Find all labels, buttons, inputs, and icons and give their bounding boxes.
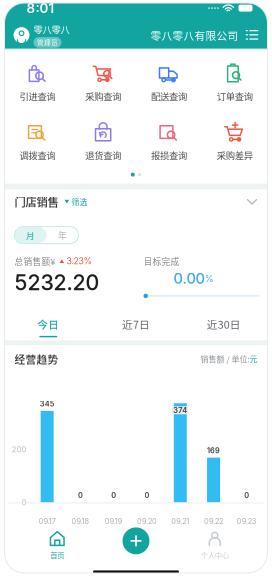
staticText: 目标完成 bbox=[143, 255, 179, 267]
button[interactable]: 配送查询 bbox=[136, 60, 202, 106]
staticText: 0 bbox=[111, 491, 116, 500]
staticText: 374 bbox=[173, 406, 187, 415]
button[interactable]: 个人中心 bbox=[162, 527, 267, 563]
staticText: 5232.20 bbox=[14, 270, 99, 295]
staticText: 采购差异 bbox=[217, 148, 253, 162]
button[interactable]: 零八零八有限公司 bbox=[150, 27, 238, 43]
staticText: 09.23 bbox=[237, 517, 257, 526]
button[interactable]: Add bbox=[119, 524, 153, 558]
button[interactable]: 近30日 bbox=[180, 312, 267, 336]
staticText: 0 bbox=[78, 491, 83, 500]
staticText: 169 bbox=[207, 446, 220, 455]
button[interactable]: Menu bbox=[245, 29, 258, 42]
staticText: 采购查询 bbox=[85, 89, 121, 103]
staticText: 09.21 bbox=[171, 517, 189, 526]
staticText: 09.20 bbox=[137, 517, 157, 526]
staticText: 近30日 bbox=[207, 316, 241, 332]
staticText: 零八零八有限公司 bbox=[150, 27, 238, 43]
staticText: 管理员 bbox=[37, 38, 58, 47]
staticText: 3.23% bbox=[66, 256, 92, 266]
button[interactable]: 首页 bbox=[4, 527, 110, 563]
staticText: 09.19 bbox=[105, 517, 123, 526]
staticText: 09.22 bbox=[204, 517, 223, 526]
staticText: 筛选 bbox=[71, 196, 87, 207]
staticText: 门店销售 bbox=[14, 193, 58, 210]
button[interactable]: 退货查询 bbox=[70, 119, 136, 165]
staticText: 元 bbox=[249, 353, 257, 365]
staticText: 个人中心 bbox=[201, 550, 229, 560]
staticText: 0 bbox=[21, 497, 26, 507]
staticText: 近7日 bbox=[122, 316, 150, 332]
staticText: 200 bbox=[11, 444, 26, 454]
staticText: % bbox=[204, 273, 213, 284]
staticText: 报损查询 bbox=[151, 148, 187, 162]
staticText: 年 bbox=[58, 229, 67, 241]
button[interactable]: 订单查询 bbox=[202, 60, 268, 106]
button[interactable]: 采购查询 bbox=[70, 60, 136, 106]
staticText: 09.17 bbox=[39, 517, 56, 526]
staticText: 经营趋势 bbox=[14, 351, 58, 367]
staticText: 0 bbox=[144, 491, 149, 500]
staticText: 配送查询 bbox=[151, 89, 187, 103]
staticText: 8:01 bbox=[26, 0, 54, 16]
staticText: 09.18 bbox=[71, 517, 89, 526]
button[interactable]: 采购差异 bbox=[202, 119, 268, 165]
staticText: 引进查询 bbox=[19, 89, 55, 103]
button[interactable]: 调拨查询 bbox=[4, 119, 70, 165]
button[interactable]: 近7日 bbox=[92, 312, 180, 336]
staticText: 首页 bbox=[50, 550, 64, 560]
staticText: 销售额 / 单位: bbox=[200, 353, 249, 365]
button[interactable]: Expand bbox=[246, 196, 257, 207]
staticText: 0.00 bbox=[173, 270, 204, 287]
button[interactable]: 今日 bbox=[4, 312, 92, 336]
button[interactable]: 年 bbox=[46, 227, 78, 243]
button[interactable]: 月 bbox=[14, 227, 46, 243]
staticText: 总销售额¥ bbox=[14, 255, 55, 267]
staticText: 订单查询 bbox=[217, 89, 253, 103]
staticText: 零八零八 bbox=[33, 22, 69, 36]
staticText: 月 bbox=[26, 229, 35, 241]
staticText: 0 bbox=[244, 491, 249, 500]
button[interactable]: 引进查询 bbox=[4, 60, 70, 106]
staticText: 退货查询 bbox=[85, 148, 121, 162]
staticText: 今日 bbox=[37, 316, 59, 332]
button[interactable]: 筛选 bbox=[64, 196, 87, 207]
button[interactable]: 零八零八 bbox=[13, 22, 69, 48]
staticText: 345 bbox=[40, 399, 55, 408]
staticText: 调拨查询 bbox=[19, 148, 55, 162]
button[interactable]: 报损查询 bbox=[136, 119, 202, 165]
